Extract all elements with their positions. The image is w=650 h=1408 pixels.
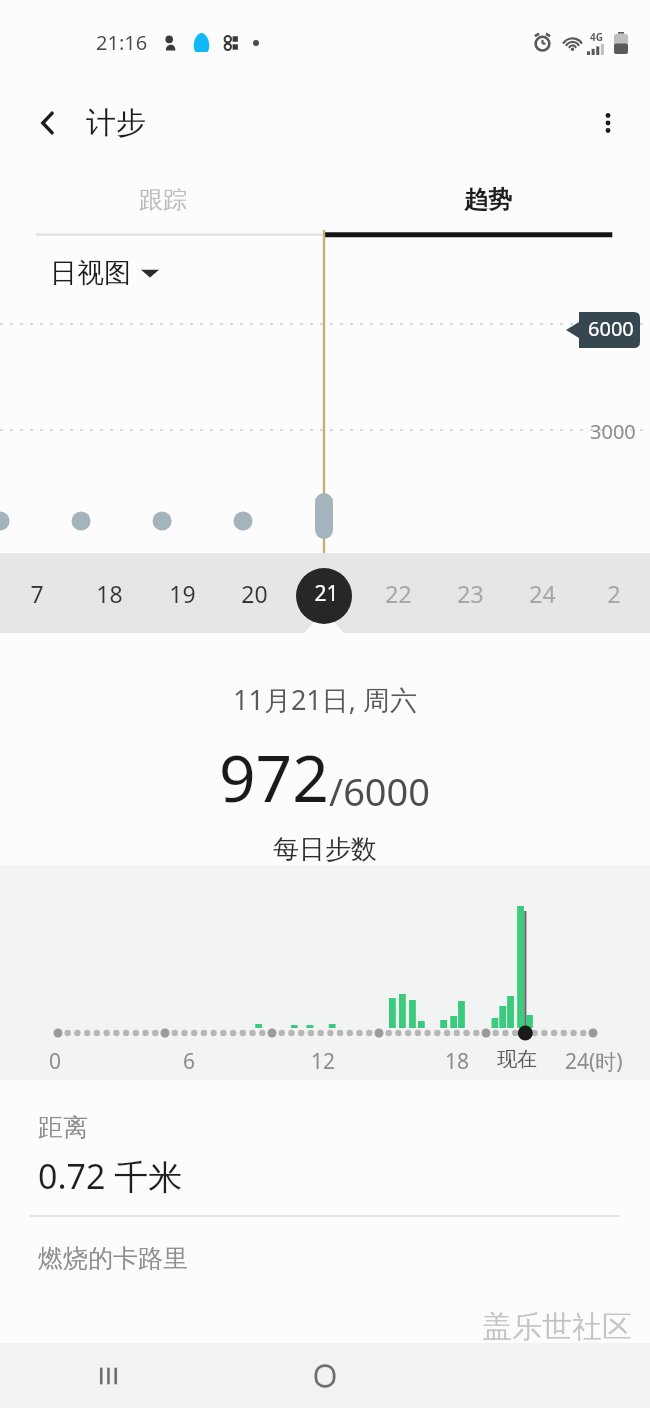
- button[interactable]: Back: [24, 99, 72, 147]
- staticText: 24(时): [565, 1047, 623, 1076]
- staticText: 日视图: [50, 256, 131, 290]
- staticText: 19: [169, 578, 196, 609]
- staticText: 距离: [38, 1112, 88, 1143]
- staticText: 18: [96, 578, 123, 609]
- button[interactable]: 22: [362, 553, 434, 633]
- staticText: 燃烧的卡路里: [38, 1243, 188, 1274]
- button[interactable]: 19: [146, 553, 218, 633]
- button[interactable]: 日视图: [50, 256, 159, 290]
- staticText: 6: [183, 1047, 196, 1076]
- staticText: 4G: [590, 30, 603, 44]
- staticText: 7: [30, 578, 44, 609]
- staticText: 0.72 千米: [38, 1153, 183, 1199]
- staticText: 12: [311, 1047, 336, 1076]
- staticText: /6000: [329, 765, 431, 817]
- button[interactable]: 18: [73, 553, 146, 633]
- staticText: 盖乐世社区: [482, 1308, 632, 1346]
- button[interactable]: 24: [506, 553, 578, 633]
- button[interactable]: 距离: [0, 1080, 650, 1274]
- staticText: 计步: [86, 104, 146, 142]
- staticText: 0: [49, 1047, 62, 1076]
- staticText: 23: [457, 578, 484, 609]
- button[interactable]: More options: [584, 99, 632, 147]
- staticText: 跟踪: [139, 185, 187, 215]
- button[interactable]: Home: [216, 1343, 433, 1408]
- staticText: 趋势: [464, 185, 512, 215]
- button[interactable]: 跟踪: [0, 162, 325, 238]
- button[interactable]: 趋势: [325, 162, 650, 238]
- staticText: 3000: [590, 418, 636, 445]
- staticText: 11月21日, 周六: [233, 681, 418, 718]
- staticText: 20: [241, 578, 268, 609]
- staticText: 18: [445, 1047, 470, 1076]
- staticText: 每日步数: [273, 833, 377, 865]
- button[interactable]: 20: [218, 553, 290, 633]
- staticText: 24: [529, 578, 556, 609]
- staticText: 6000: [588, 315, 634, 342]
- button[interactable]: 2: [578, 553, 650, 633]
- staticText: 21:16: [96, 29, 148, 56]
- staticText: 21: [314, 579, 339, 608]
- staticText: 972: [219, 734, 329, 821]
- button[interactable]: 21: [290, 553, 362, 633]
- button[interactable]: Recent apps: [0, 1343, 216, 1408]
- staticText: 2: [607, 578, 621, 609]
- staticText: 现在: [497, 1047, 537, 1072]
- button[interactable]: 23: [434, 553, 506, 633]
- staticText: 22: [385, 578, 412, 609]
- button[interactable]: 7: [0, 553, 73, 633]
